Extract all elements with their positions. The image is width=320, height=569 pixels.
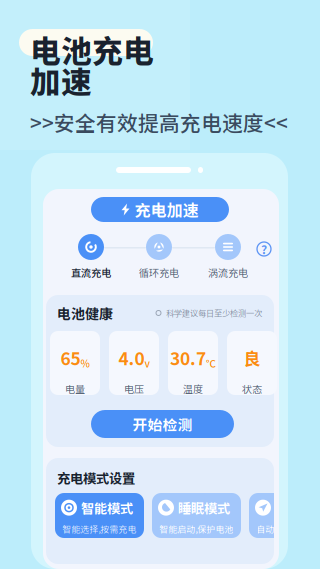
staticText: 智能选择,按需充电 <box>62 522 136 535</box>
staticText: 智能模式 <box>81 498 133 517</box>
button[interactable]: 充电加速 <box>91 197 229 222</box>
button[interactable]: 帮助 <box>256 241 272 257</box>
staticText: 开始检测 <box>132 413 192 435</box>
staticText: 加速 <box>30 58 92 102</box>
staticText: 自动识别,智能控制 <box>256 522 320 535</box>
staticText: 30.7 <box>170 345 206 370</box>
staticText: 睡眠模式 <box>178 498 230 517</box>
staticText: ℃ <box>206 356 216 370</box>
staticText: 智能启动,保护电池 <box>159 522 233 535</box>
staticText: >>安全有效提高充电速度<< <box>30 107 288 137</box>
staticText: 充电加速 <box>134 198 198 221</box>
button[interactable]: 循环充电 <box>136 234 182 280</box>
staticText: 电池健康 <box>57 303 113 323</box>
staticText: ? <box>261 240 267 258</box>
staticText: 电池充电 <box>30 27 154 71</box>
staticText: 循环充电 <box>139 265 179 280</box>
button[interactable]: 智能模式 <box>55 493 144 538</box>
staticText: 涡流充电 <box>208 265 248 280</box>
staticText: 直流充电 <box>71 265 111 280</box>
staticText: 良 <box>243 345 260 370</box>
staticText: 65 <box>60 345 80 370</box>
staticText: v <box>144 356 149 370</box>
staticText: 科学建议每日至少检测一次 <box>166 307 262 319</box>
staticText: 电量 <box>65 381 85 396</box>
staticText: 充电模式设置 <box>57 468 135 487</box>
staticText: 电压 <box>124 381 144 396</box>
button[interactable]: 自动模式 <box>249 493 320 538</box>
staticText: 4.0 <box>118 345 144 370</box>
staticText: % <box>80 356 89 370</box>
button[interactable]: 睡眠模式 <box>152 493 241 538</box>
button[interactable]: 开始检测 <box>91 410 234 438</box>
button[interactable]: 涡流充电 <box>205 234 251 280</box>
staticText: 状态 <box>242 381 262 396</box>
staticText: 温度 <box>183 381 203 396</box>
button[interactable]: 直流充电 <box>68 234 114 280</box>
staticText: 自动模式 <box>275 498 320 517</box>
